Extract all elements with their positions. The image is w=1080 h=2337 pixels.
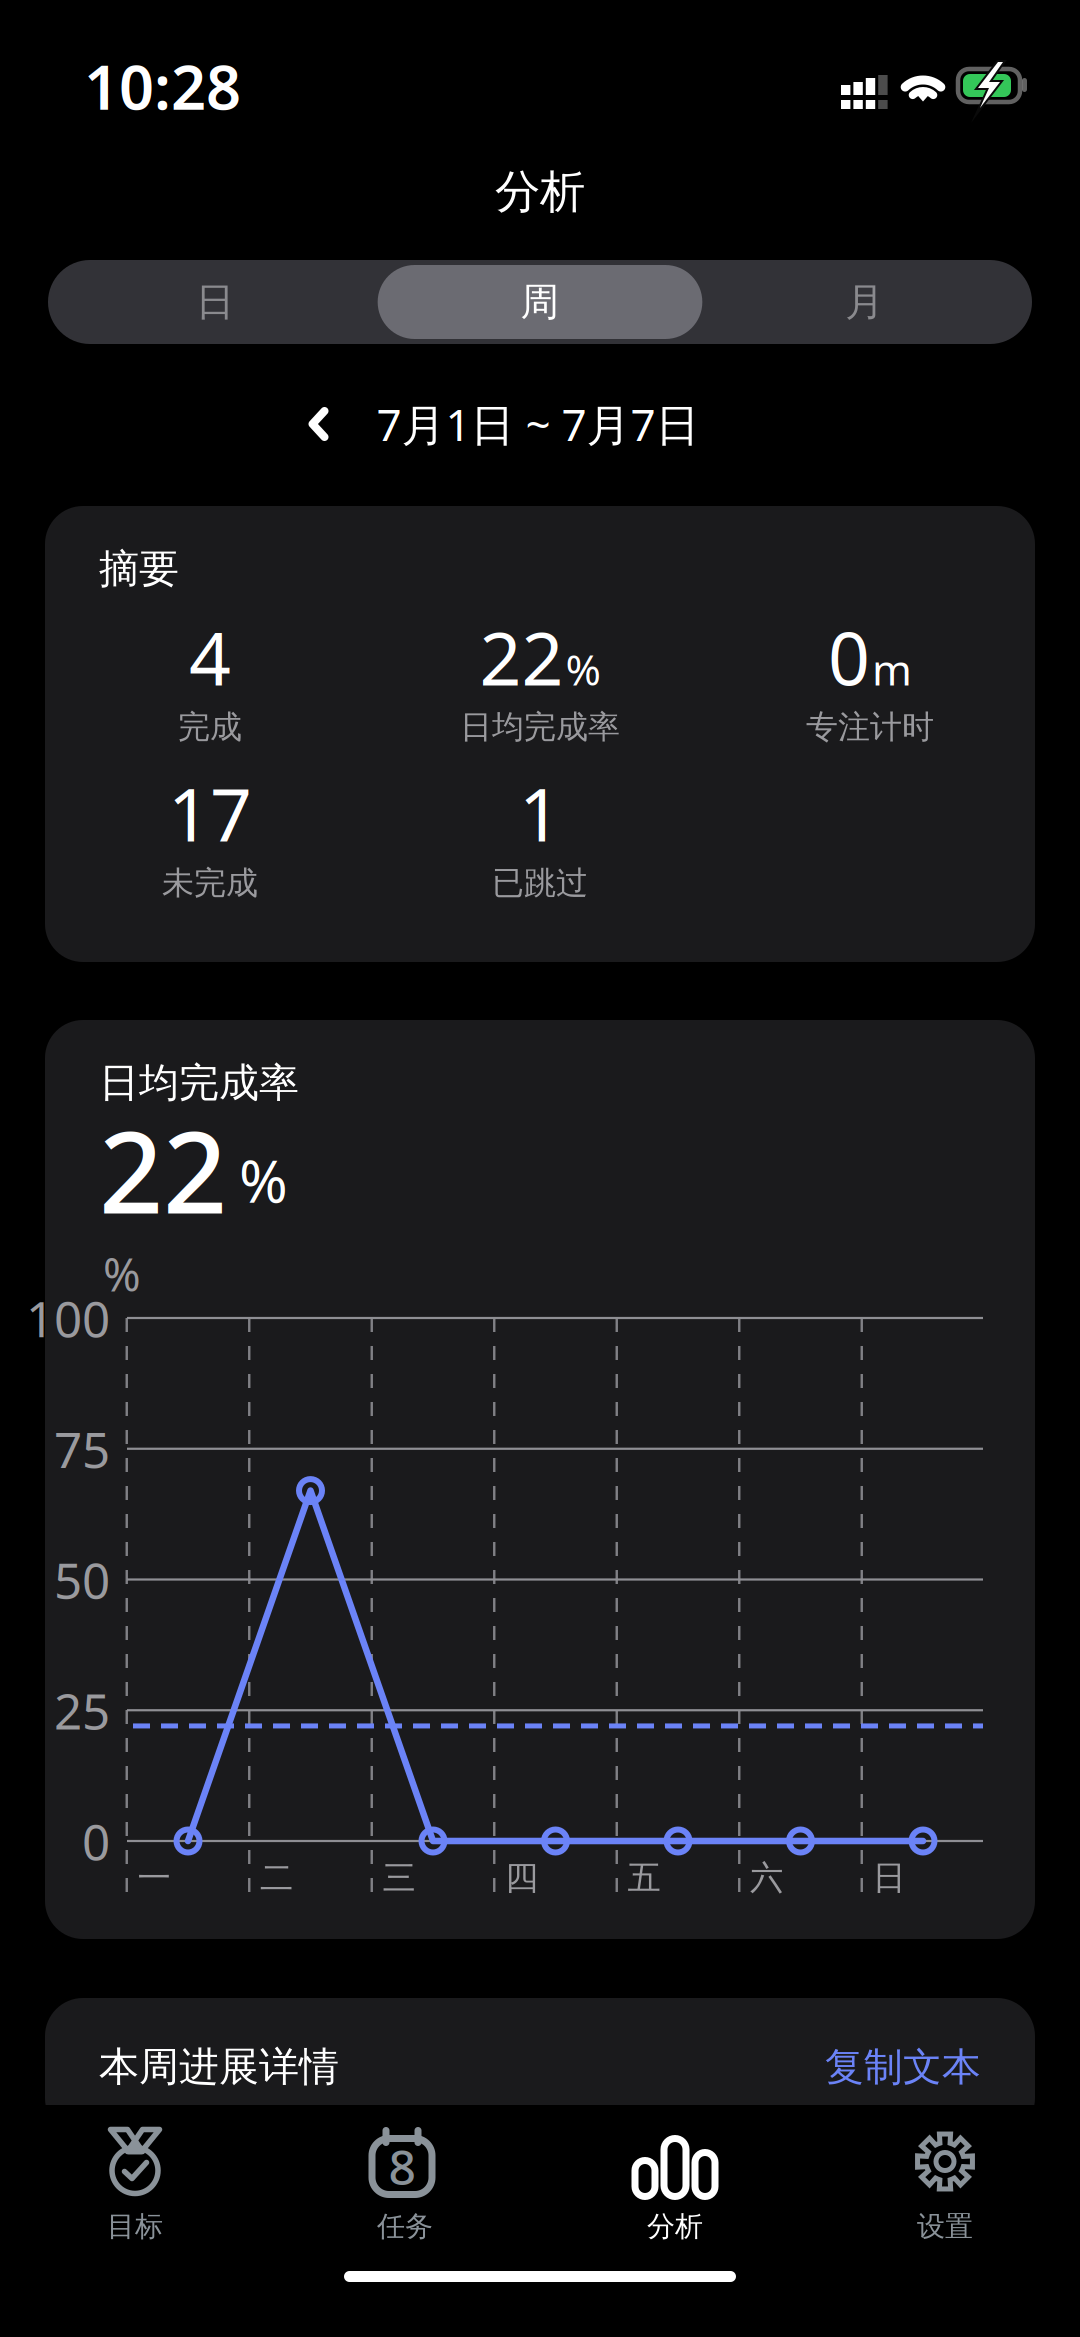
staticText: m — [872, 641, 912, 697]
staticText: 4 — [189, 608, 231, 706]
staticText: % — [565, 641, 600, 697]
staticText: 周 — [520, 278, 559, 326]
staticText: 17 — [168, 764, 252, 862]
staticText: 月 — [845, 278, 884, 326]
staticText: 日 — [872, 1857, 905, 1898]
staticText: 未完成 — [162, 863, 258, 903]
staticText: 22 — [479, 608, 563, 706]
staticText: 75 — [54, 1416, 110, 1481]
staticText: 摘要 — [99, 544, 179, 593]
staticText: 0 — [82, 1808, 110, 1874]
staticText: 日均完成率 — [460, 707, 620, 747]
button[interactable]: 周 — [378, 265, 702, 339]
button[interactable]: 分析 — [540, 2121, 810, 2254]
button[interactable]: 月 — [702, 263, 1027, 341]
staticText: 10:28 — [84, 45, 241, 127]
staticText: 分析 — [647, 2209, 703, 2244]
button[interactable]: Previous week — [298, 397, 338, 451]
staticText: 二 — [260, 1857, 293, 1898]
button[interactable]: 目标 — [0, 2121, 270, 2254]
staticText: 50 — [54, 1547, 110, 1612]
staticText: 7月1日 ~ 7月7日 — [376, 395, 699, 453]
staticText: 专注计时 — [806, 707, 934, 747]
staticText: 100 — [26, 1285, 110, 1351]
staticText: 复制文本 — [825, 2043, 981, 2091]
button[interactable]: 日 — [53, 263, 378, 341]
staticText: 日 — [196, 278, 235, 326]
staticText: % — [239, 1141, 288, 1219]
staticText: 五 — [627, 1857, 660, 1898]
staticText: 目标 — [107, 2209, 163, 2244]
staticText: 任务 — [377, 2209, 433, 2244]
staticText: 0 — [828, 608, 870, 706]
staticText: 8 — [388, 2135, 415, 2198]
button[interactable]: 本周进展详情 — [45, 1998, 1035, 2136]
staticText: 三 — [382, 1857, 415, 1898]
staticText: 一 — [137, 1857, 170, 1898]
staticText: 完成 — [178, 707, 242, 747]
staticText: 六 — [750, 1857, 783, 1898]
staticText: 设置 — [917, 2209, 973, 2244]
staticText: 已跳过 — [492, 863, 588, 903]
staticText: 分析 — [495, 164, 585, 220]
staticText: 本周进展详情 — [99, 2042, 339, 2091]
staticText: 1 — [519, 764, 561, 862]
staticText: 25 — [54, 1677, 110, 1743]
button[interactable]: 8 — [270, 2121, 540, 2254]
button[interactable]: 设置 — [810, 2121, 1080, 2254]
staticText: % — [103, 1244, 141, 1304]
staticText: 日均完成率 — [99, 1058, 299, 1107]
staticText: 22 — [99, 1096, 227, 1244]
staticText: 四 — [505, 1857, 538, 1898]
